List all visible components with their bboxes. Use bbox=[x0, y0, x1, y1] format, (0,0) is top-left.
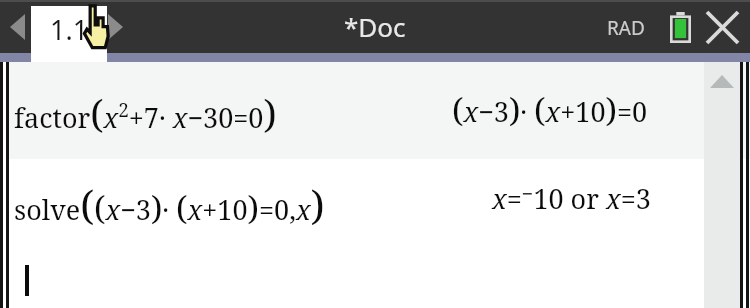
button[interactable]: Close document bbox=[701, 7, 743, 47]
staticText: x=−10 or x=3 bbox=[492, 180, 651, 217]
staticText: (x−3)· (x+10)=0 bbox=[452, 87, 648, 132]
staticText: solve((x−3)· (x+10)=0,x) bbox=[14, 177, 325, 231]
staticText: RAD bbox=[607, 15, 645, 41]
staticText: *Doc bbox=[344, 9, 406, 44]
staticText: factor(x2+7· x−30=0) bbox=[14, 87, 277, 139]
staticText: 1.1 bbox=[50, 11, 89, 48]
button[interactable]: 1.1 bbox=[31, 6, 107, 62]
button[interactable]: Battery status bbox=[664, 9, 696, 45]
button[interactable]: Next page bbox=[100, 9, 130, 45]
button[interactable]: Previous page bbox=[2, 9, 32, 45]
button[interactable]: Scroll up bbox=[706, 68, 738, 94]
